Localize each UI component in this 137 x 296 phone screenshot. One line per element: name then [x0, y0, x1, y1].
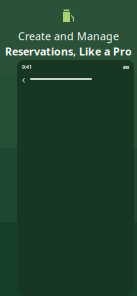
staticText: ‹ [22, 72, 25, 86]
staticText: ▮▮▮ [123, 65, 129, 69]
staticText: Reservations, Like a Pro [5, 44, 132, 58]
staticText: Create and Manage [18, 29, 119, 43]
staticText: 9:41 [22, 63, 32, 71]
